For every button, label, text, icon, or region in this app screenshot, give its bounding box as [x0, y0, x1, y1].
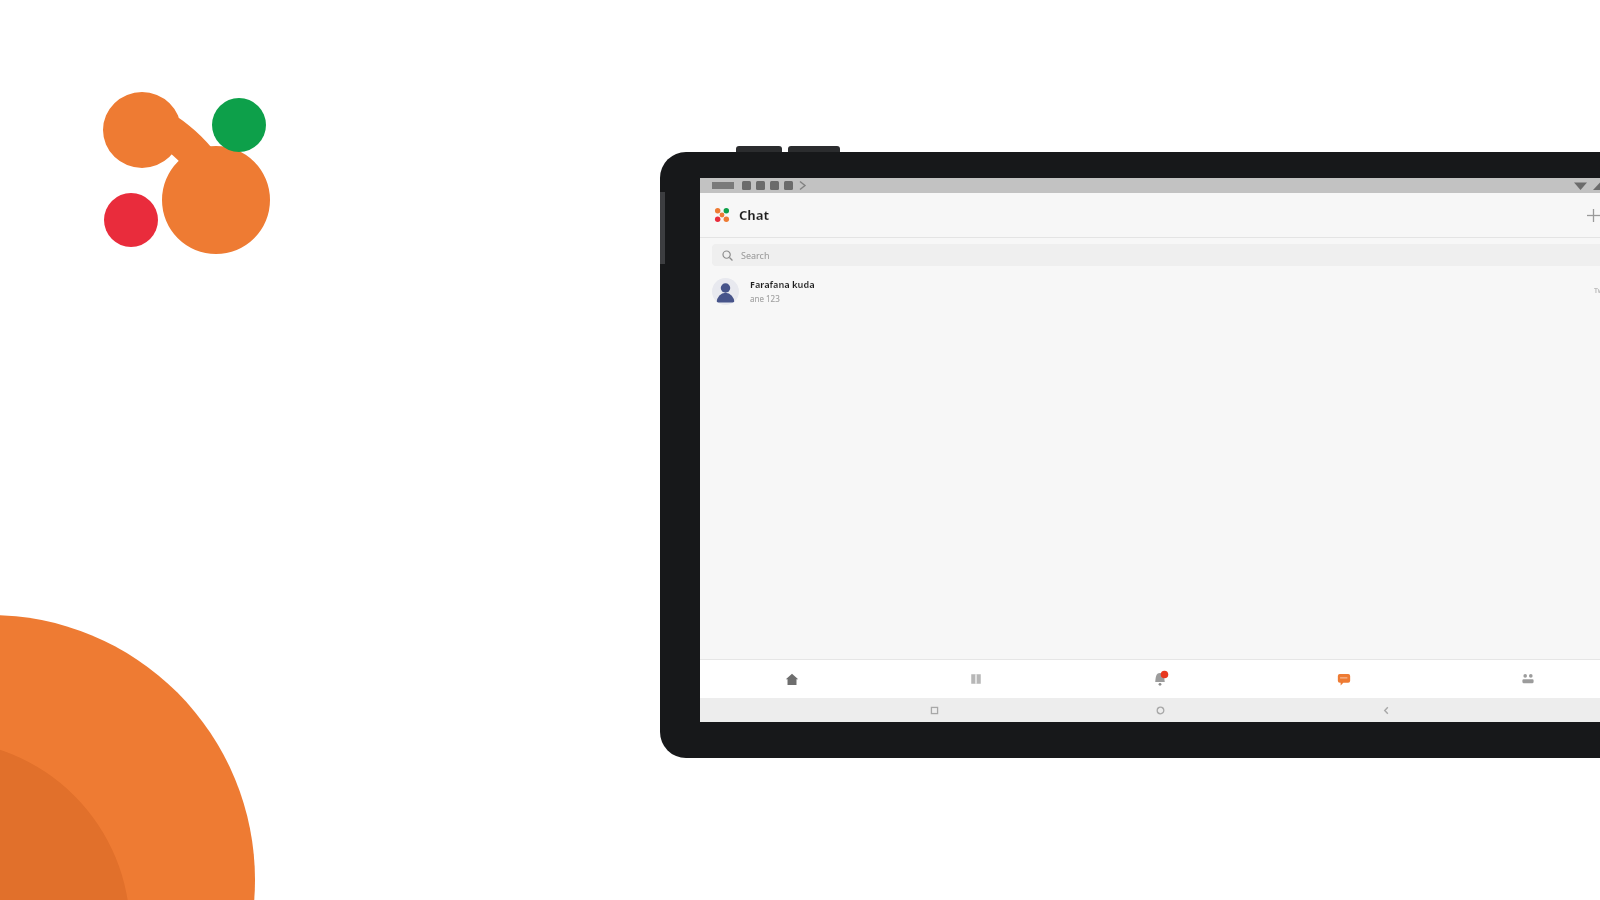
button[interactable]: Home [1148, 698, 1172, 722]
button[interactable]: Notifications [1068, 660, 1252, 698]
staticText: Two [1594, 286, 1600, 296]
button[interactable]: Farafana kuda [700, 272, 1600, 310]
button[interactable]: Search [712, 244, 1600, 266]
button[interactable]: New chat [1580, 202, 1600, 228]
staticText: ane 123 [750, 293, 780, 304]
button[interactable]: Recents [922, 698, 946, 722]
staticText: Chat [739, 206, 770, 224]
button[interactable]: Chat [1252, 660, 1436, 698]
button[interactable]: Back [1374, 698, 1398, 722]
staticText: Farafana kuda [750, 278, 815, 290]
button[interactable]: Home [700, 660, 884, 698]
staticText: Search [741, 249, 770, 261]
button[interactable]: Groups [1436, 660, 1600, 698]
button[interactable]: Dashboard [884, 660, 1068, 698]
